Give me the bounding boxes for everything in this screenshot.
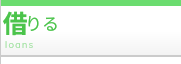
staticText: りる: [25, 10, 59, 35]
staticText: 借: [3, 4, 29, 40]
staticText: loans: [5, 39, 35, 50]
